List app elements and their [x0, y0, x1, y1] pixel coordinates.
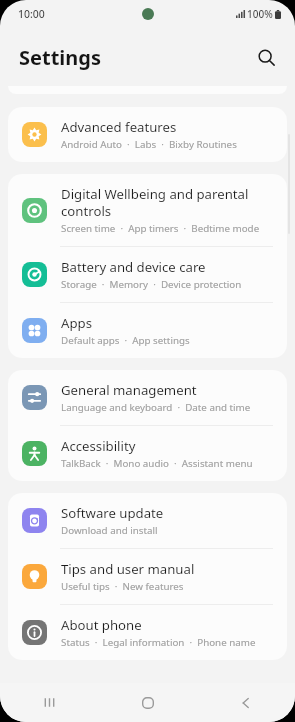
staticText: TalkBack · Mono audio · Assistant menu [61, 457, 253, 470]
staticText: Accessibility [61, 437, 136, 455]
button[interactable]: Home [99, 683, 197, 722]
button[interactable]: Apps [8, 303, 287, 358]
staticText: Default apps · App settings [61, 334, 190, 347]
staticText: Download and install [61, 524, 158, 537]
staticText: 100% [247, 7, 273, 21]
button[interactable]: Software update [8, 493, 287, 548]
button[interactable]: Tips and user manual [8, 549, 287, 604]
staticText: Tips and user manual [61, 560, 195, 578]
button[interactable]: Search [249, 40, 283, 74]
staticText: Apps [61, 314, 92, 332]
staticText: General management [61, 381, 197, 399]
button[interactable]: Accessibility [8, 426, 287, 481]
staticText: Status · Legal information · Phone name [61, 636, 256, 649]
staticText: Storage · Memory · Device protection [61, 278, 242, 291]
button[interactable]: Recent apps [0, 683, 99, 722]
button[interactable]: Back [197, 683, 295, 722]
button[interactable]: General management [8, 370, 287, 425]
staticText: About phone [61, 616, 142, 634]
button[interactable]: About phone [8, 605, 287, 660]
button[interactable]: Digital Wellbeing and parental controls [8, 174, 287, 246]
staticText: Digital Wellbeing and parental controls [61, 185, 249, 220]
staticText: Battery and device care [61, 258, 206, 276]
button[interactable]: Battery and device care [8, 247, 287, 302]
staticText: Screen time · App timers · Bedtime mode [61, 222, 260, 235]
staticText: Settings [19, 44, 101, 71]
staticText: Useful tips · New features [61, 580, 184, 593]
button[interactable]: Advanced features [8, 107, 287, 162]
staticText: Software update [61, 504, 164, 522]
staticText: Advanced features [61, 118, 177, 136]
staticText: Android Auto · Labs · Bixby Routines [61, 138, 237, 151]
staticText: Language and keyboard · Date and time [61, 401, 251, 414]
staticText: 10:00 [18, 7, 45, 21]
